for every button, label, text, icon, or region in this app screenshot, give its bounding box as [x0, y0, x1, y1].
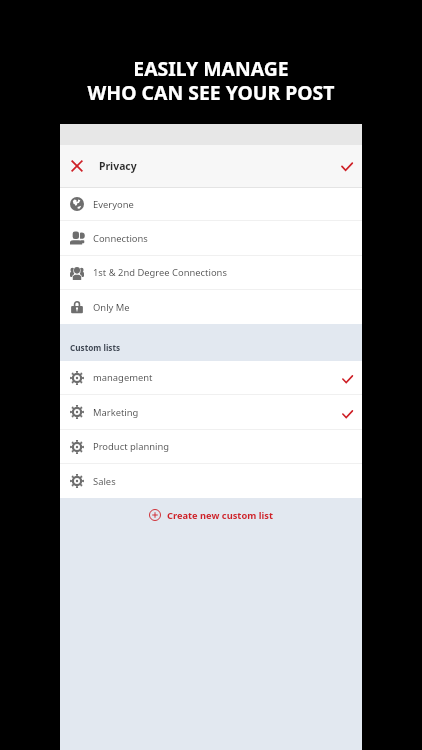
staticText: Create new custom list: [167, 509, 273, 522]
staticText: 1st & 2nd Degree Connections: [93, 266, 227, 279]
other: Close: [60, 145, 94, 187]
button[interactable]: Create new custom list: [60, 498, 362, 532]
button[interactable]: Marketing: [60, 395, 362, 429]
staticText: management: [93, 371, 153, 384]
staticText: Sales: [93, 475, 116, 488]
button[interactable]: Everyone: [60, 188, 362, 220]
staticText: Privacy: [99, 159, 137, 173]
button[interactable]: management: [60, 361, 362, 394]
button[interactable]: Close: [60, 145, 362, 187]
other: Confirm: [332, 145, 362, 187]
button[interactable]: Product planning: [60, 430, 362, 463]
button[interactable]: Sales: [60, 464, 362, 498]
button[interactable]: Connections: [60, 221, 362, 255]
button[interactable]: 1st & 2nd Degree Connections: [60, 256, 362, 289]
staticText: Custom lists: [70, 342, 121, 353]
staticText: Product planning: [93, 440, 170, 453]
staticText: Connections: [93, 232, 148, 245]
staticText: Marketing: [93, 406, 139, 419]
button[interactable]: Only Me: [60, 290, 362, 324]
staticText: Only Me: [93, 301, 130, 314]
staticText: Everyone: [93, 198, 134, 211]
staticText: EASILY MANAGE WHO CAN SEE YOUR POST: [0, 55, 422, 106]
